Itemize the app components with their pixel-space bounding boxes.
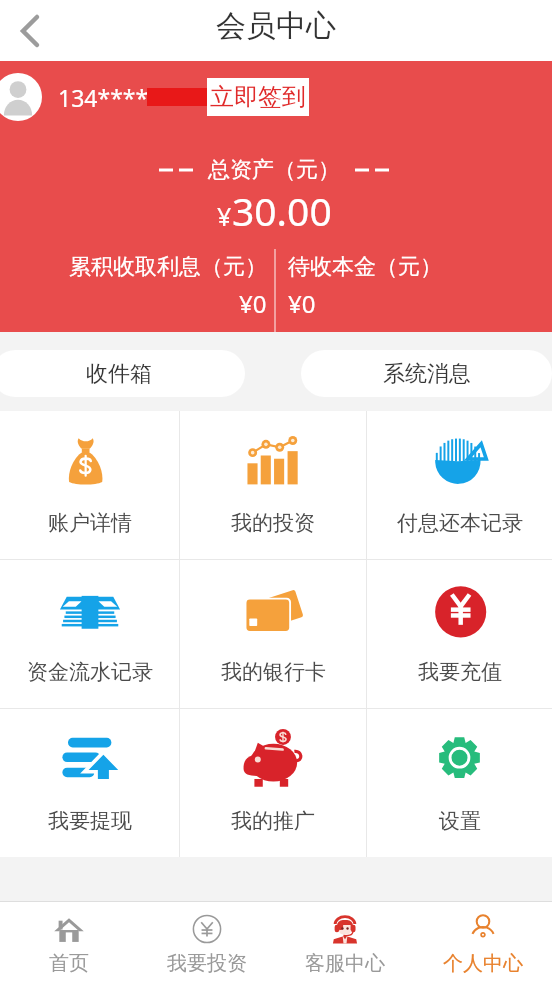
staticText: 收件箱 xyxy=(86,360,152,388)
staticText: 付息还本记录 xyxy=(397,510,523,536)
staticText: 账户详情 xyxy=(48,510,132,536)
staticText: ¥ xyxy=(217,199,232,233)
staticText: 系统消息 xyxy=(383,360,471,388)
staticText: 我的推广 xyxy=(231,808,315,834)
button[interactable]: 我要投资 xyxy=(138,902,276,986)
button[interactable]: 账户详情 xyxy=(0,411,179,559)
button[interactable]: 收件箱 xyxy=(0,350,245,397)
staticText: 我要投资 xyxy=(167,951,247,976)
staticText: 待收本金（元） xyxy=(288,253,442,281)
button[interactable]: 立即签到 xyxy=(210,82,306,112)
button[interactable]: 付息还本记录 xyxy=(367,411,552,559)
button[interactable]: Back xyxy=(0,3,56,59)
button[interactable]: 资金流水记录 xyxy=(0,560,179,708)
button[interactable]: 设置 xyxy=(367,709,552,857)
staticText: 我的投资 xyxy=(231,510,315,536)
button[interactable]: 我要充值 xyxy=(367,560,552,708)
staticText: ¥0 xyxy=(288,287,316,320)
staticText: 客服中心 xyxy=(305,951,385,976)
staticText: ¥0 xyxy=(239,287,267,320)
staticText: 我要充值 xyxy=(418,659,502,685)
staticText: 立即签到 xyxy=(210,82,306,112)
button[interactable]: 我的银行卡 xyxy=(180,560,366,708)
button[interactable]: 系统消息 xyxy=(301,350,552,397)
staticText: 我的银行卡 xyxy=(221,659,326,685)
button[interactable]: 我要提现 xyxy=(0,709,179,857)
staticText: 我要提现 xyxy=(48,808,132,834)
staticText: 首页 xyxy=(49,951,89,976)
staticText: 134**** xyxy=(58,82,149,113)
button[interactable]: 我的投资 xyxy=(180,411,366,559)
button[interactable]: 首页 xyxy=(0,902,138,986)
staticText: 30.00 xyxy=(232,184,332,237)
staticText: 个人中心 xyxy=(443,951,523,976)
staticText: 累积收取利息（元） xyxy=(69,253,267,281)
button[interactable]: 个人中心 xyxy=(414,902,552,986)
button[interactable]: 我的推广 xyxy=(180,709,366,857)
staticText: 设置 xyxy=(439,808,481,834)
staticText: 资金流水记录 xyxy=(27,659,153,685)
staticText: 会员中心 xyxy=(216,7,336,45)
button[interactable]: 客服中心 xyxy=(276,902,414,986)
staticText: 总资产（元） xyxy=(208,156,340,184)
